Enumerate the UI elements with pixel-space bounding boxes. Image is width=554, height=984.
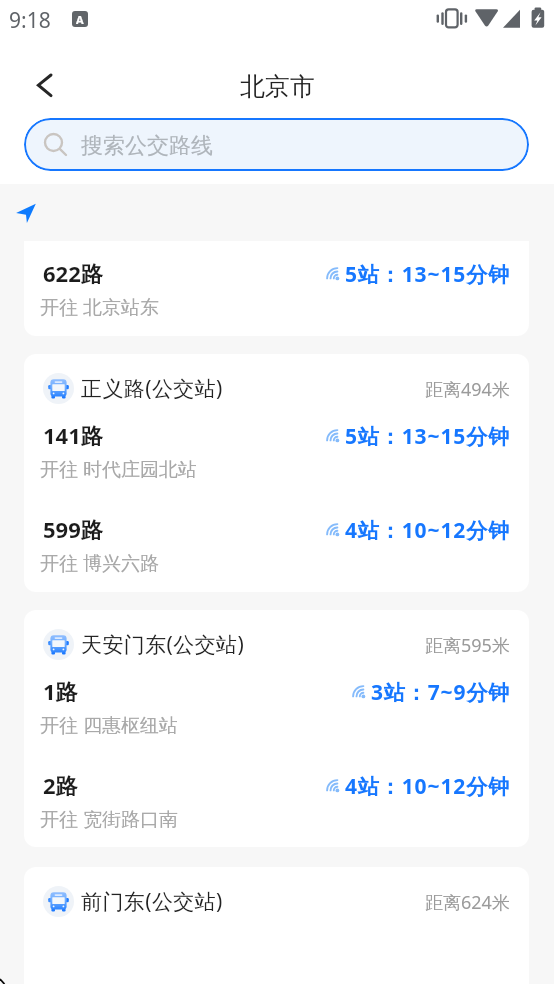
staticText: 1路 [43, 676, 78, 706]
staticText: 北京市 [240, 71, 315, 102]
staticText: 4站：10~12分钟 [345, 772, 511, 801]
staticText: A [76, 12, 84, 27]
button[interactable]: 599路 [24, 506, 529, 578]
staticText: 599路 [43, 514, 103, 544]
staticText: 9:18 [9, 6, 51, 35]
button[interactable]: My location [6, 196, 42, 232]
staticText: 距离624米 [425, 890, 510, 915]
staticText: 5站：13~15分钟 [345, 260, 511, 289]
button[interactable]: 141路 [24, 412, 529, 484]
staticText: 开往 博兴六路 [40, 550, 159, 576]
staticText: 5站：13~15分钟 [345, 422, 511, 451]
button[interactable]: 2路 [24, 762, 529, 834]
staticText: 4站：10~12分钟 [345, 516, 511, 545]
staticText: 开往 四惠枢纽站 [40, 712, 178, 738]
staticText: 正义路(公交站) [81, 374, 223, 403]
staticText: 距离595米 [425, 633, 510, 658]
button[interactable]: 1路 [24, 668, 529, 740]
staticText: 开往 北京站东 [40, 294, 159, 320]
staticText: 3站：7~9分钟 [371, 678, 511, 707]
button[interactable]: Back [22, 62, 68, 108]
staticText: 141路 [43, 420, 103, 450]
staticText: 天安门东(公交站) [81, 630, 245, 659]
staticText: 前门东(公交站) [81, 887, 223, 916]
button[interactable]: 正义路(公交站) [24, 354, 529, 592]
button[interactable]: 天安门东(公交站) [24, 610, 529, 668]
button[interactable]: 搜索公交路线 [24, 118, 529, 171]
staticText: 搜索公交路线 [81, 132, 213, 160]
staticText: 开往 宽街路口南 [40, 806, 178, 832]
button[interactable]: 622路 [24, 241, 529, 336]
button[interactable]: 天安门东(公交站) [24, 610, 529, 847]
button[interactable]: 前门东(公交站) [24, 867, 529, 984]
staticText: 2路 [43, 770, 78, 800]
staticText: 622路 [43, 258, 103, 288]
button[interactable]: 正义路(公交站) [24, 354, 529, 412]
button[interactable]: 前门东(公交站) [24, 867, 529, 925]
staticText: 距离494米 [425, 377, 510, 402]
button[interactable]: 622路 [24, 250, 529, 322]
staticText: 开往 时代庄园北站 [40, 456, 197, 482]
